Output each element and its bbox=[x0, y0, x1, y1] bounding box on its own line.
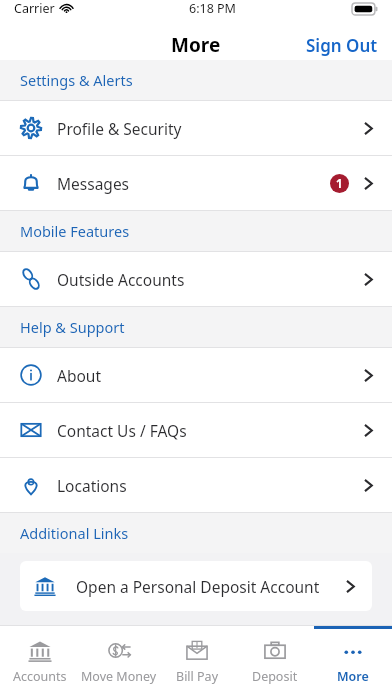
staticText: Outside Accounts bbox=[57, 269, 185, 290]
staticText: Contact Us / FAQs bbox=[57, 420, 187, 441]
staticText: Mobile Features bbox=[20, 221, 130, 241]
button[interactable]: Settings bbox=[0, 101, 392, 155]
other: Locations bbox=[20, 474, 42, 496]
staticText: Bill Pay bbox=[176, 668, 219, 685]
staticText: More bbox=[337, 668, 369, 685]
staticText: Deposit bbox=[252, 668, 298, 685]
staticText: Move Money bbox=[81, 668, 157, 685]
staticText: Sign Out bbox=[306, 34, 378, 56]
staticText: Settings & Alerts bbox=[20, 70, 133, 90]
button[interactable]: Accounts bbox=[0, 626, 79, 696]
other: Accounts bbox=[28, 639, 52, 663]
other: Deposit bbox=[263, 639, 287, 663]
other: Settings bbox=[20, 117, 42, 139]
staticText: Open a Personal Deposit Account bbox=[76, 576, 320, 597]
other: Accounts bbox=[34, 575, 56, 597]
other: Contact Us bbox=[20, 419, 42, 441]
other: Outside Accounts bbox=[20, 268, 42, 290]
button[interactable]: About bbox=[0, 348, 392, 402]
button[interactable]: Messages bbox=[0, 156, 392, 210]
button[interactable]: Bill Pay bbox=[158, 626, 236, 696]
button[interactable]: Sign Out bbox=[292, 30, 392, 60]
button[interactable]: Move Money bbox=[79, 626, 158, 696]
staticText: 6:18 PM bbox=[189, 0, 236, 17]
other: More bbox=[341, 639, 365, 663]
button[interactable]: More bbox=[314, 626, 392, 696]
staticText: About bbox=[57, 365, 101, 386]
staticText: Additional Links bbox=[20, 523, 129, 543]
button[interactable]: Locations bbox=[0, 458, 392, 512]
staticText: Locations bbox=[57, 475, 127, 496]
button[interactable]: Accounts bbox=[20, 561, 372, 611]
staticText: Carrier bbox=[14, 0, 55, 17]
other: Move Money bbox=[107, 639, 131, 663]
button[interactable]: Contact Us bbox=[0, 403, 392, 457]
staticText: Help & Support bbox=[20, 317, 125, 337]
staticText: More bbox=[171, 32, 221, 58]
staticText: Messages bbox=[57, 173, 130, 194]
staticText: 1 bbox=[336, 176, 343, 192]
staticText: Profile & Security bbox=[57, 118, 182, 139]
button[interactable]: Deposit bbox=[236, 626, 314, 696]
other: Bill Pay bbox=[185, 639, 209, 663]
button[interactable]: Outside Accounts bbox=[0, 252, 392, 306]
other: Messages bbox=[20, 172, 42, 194]
other: About bbox=[20, 364, 42, 386]
staticText: Accounts bbox=[13, 668, 67, 685]
